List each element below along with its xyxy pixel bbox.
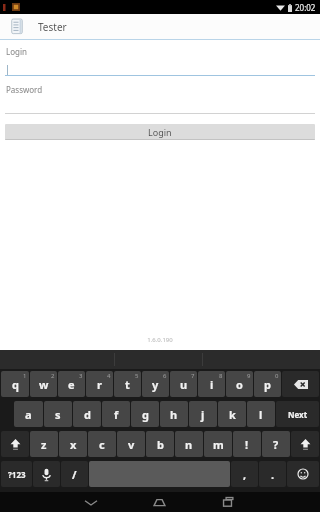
staticText: 20:02 [295, 2, 316, 13]
staticText: 2 [51, 372, 55, 380]
staticText: n [185, 437, 193, 452]
staticText: b [157, 437, 164, 452]
staticText: h [170, 407, 178, 422]
button[interactable]: i [198, 371, 225, 397]
staticText: m [213, 437, 224, 452]
staticText: q [12, 377, 19, 392]
button[interactable]: o [226, 371, 253, 397]
staticText: d [84, 407, 91, 422]
button[interactable]: h [160, 401, 188, 427]
button[interactable]: e [58, 371, 85, 397]
staticText: c [99, 437, 105, 452]
staticText: Login [6, 46, 27, 57]
staticText: 1 [23, 372, 27, 380]
button[interactable]: a [14, 401, 43, 427]
button[interactable]: j [189, 401, 217, 427]
staticText: Next [288, 409, 308, 420]
button[interactable]: Shift [291, 431, 319, 457]
button[interactable]: p [254, 371, 281, 397]
button[interactable]: Next [276, 401, 319, 427]
staticText: z [41, 437, 47, 452]
staticText: y [152, 377, 159, 392]
button[interactable]: c [88, 431, 116, 457]
button[interactable]: s [44, 401, 72, 427]
button[interactable]: Voice input [33, 461, 60, 487]
staticText: 1.6.0.190 [147, 336, 173, 344]
staticText: j [201, 407, 205, 422]
button[interactable]: v [117, 431, 145, 457]
staticText: a [25, 407, 32, 422]
button[interactable]: Symbols [1, 461, 32, 487]
staticText: p [264, 377, 271, 392]
staticText: r [97, 377, 102, 392]
button[interactable]: Login [5, 124, 315, 140]
button[interactable]: Shift [1, 431, 29, 457]
staticText: Tester [38, 20, 67, 34]
staticText: 4 [107, 372, 111, 380]
button[interactable]: l [247, 401, 275, 427]
button[interactable]: ! [233, 431, 261, 457]
button[interactable]: Backspace [282, 371, 319, 397]
staticText: u [180, 377, 188, 392]
staticText: l [259, 407, 263, 422]
staticText: , [243, 467, 247, 482]
staticText: w [39, 377, 49, 392]
staticText: e [68, 377, 75, 392]
staticText: Login [148, 126, 172, 138]
button[interactable]: q [1, 371, 29, 397]
button[interactable]: x [59, 431, 87, 457]
staticText: . [271, 467, 275, 482]
staticText: 9 [247, 372, 251, 380]
button[interactable]: r [86, 371, 113, 397]
button[interactable]: App [9, 14, 320, 39]
button[interactable]: t [114, 371, 141, 397]
button[interactable]: Login [5, 46, 315, 76]
button[interactable]: w [30, 371, 57, 397]
button[interactable]: / [61, 461, 88, 487]
staticText: g [142, 407, 149, 422]
button[interactable]: ? [262, 431, 290, 457]
button[interactable]: Emoji [287, 461, 319, 487]
staticText: 5 [135, 372, 139, 380]
button[interactable]: b [146, 431, 174, 457]
staticText: 7 [191, 372, 195, 380]
staticText: 6 [163, 372, 167, 380]
staticText: / [72, 467, 77, 482]
staticText: ! [245, 437, 249, 452]
button[interactable]: u [170, 371, 197, 397]
staticText: f [114, 407, 119, 422]
staticText: 8 [219, 372, 223, 380]
staticText: s [55, 407, 61, 422]
button[interactable]: d [73, 401, 101, 427]
button[interactable]: , [231, 461, 258, 487]
staticText: ?123 [8, 469, 26, 480]
button[interactable]: Back [56, 492, 125, 512]
staticText: ? [273, 437, 279, 452]
staticText: Password [6, 84, 43, 95]
button[interactable]: n [175, 431, 203, 457]
button[interactable]: Home [125, 492, 194, 512]
staticText: v [128, 437, 135, 452]
staticText: o [236, 377, 243, 392]
button[interactable]: z [30, 431, 58, 457]
button[interactable]: . [259, 461, 286, 487]
staticText: 0 [275, 372, 279, 380]
button[interactable]: g [131, 401, 159, 427]
button[interactable]: y [142, 371, 169, 397]
button[interactable]: f [102, 401, 130, 427]
staticText: i [210, 377, 214, 392]
staticText: k [229, 407, 236, 422]
button[interactable]: k [218, 401, 246, 427]
staticText: x [70, 437, 77, 452]
staticText: t [125, 377, 130, 392]
button[interactable]: Recents [194, 492, 263, 512]
button[interactable]: Password [5, 84, 315, 114]
button[interactable]: m [204, 431, 232, 457]
staticText: 3 [79, 372, 83, 380]
